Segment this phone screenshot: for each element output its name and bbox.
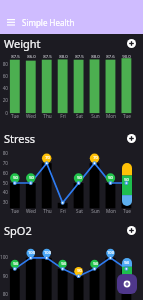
staticText: 94: [124, 260, 129, 265]
staticText: SpO2: [4, 223, 32, 238]
staticText: 100: [28, 250, 35, 255]
staticText: 100: [107, 250, 114, 255]
staticText: 90.0: [122, 53, 131, 59]
staticText: 50: [124, 177, 129, 182]
staticText: 50: [108, 175, 113, 180]
staticText: 94: [93, 261, 98, 266]
staticText: 0: [5, 110, 8, 116]
staticText: 87.5: [75, 53, 84, 59]
staticText: 90: [77, 268, 82, 273]
staticText: Tue: [123, 113, 131, 119]
staticText: 94: [13, 261, 18, 266]
staticText: Tue: [11, 113, 19, 119]
staticText: Fri: [60, 208, 66, 214]
staticText: 60: [2, 73, 8, 79]
staticText: 70: [45, 155, 50, 160]
staticText: 50: [2, 180, 8, 186]
staticText: Mon: [106, 113, 116, 119]
staticText: 30: [2, 199, 8, 205]
staticText: Simple Health: [22, 17, 75, 28]
staticText: 80: [2, 150, 8, 156]
staticText: 88.0: [59, 53, 68, 59]
staticText: 100: [0, 254, 8, 260]
button[interactable]: Add: [117, 274, 137, 294]
staticText: 86.0: [27, 53, 36, 59]
staticText: Tue: [11, 208, 19, 214]
button[interactable]: Add SpO2 entry: [125, 224, 138, 237]
staticText: 40: [2, 189, 8, 195]
staticText: 40: [2, 85, 8, 91]
button[interactable]: Add Stress entry: [125, 132, 138, 145]
staticText: Wed: [26, 208, 36, 214]
staticText: 80: [2, 61, 8, 67]
staticText: Tue: [123, 208, 131, 214]
staticText: Sat: [76, 113, 83, 119]
staticText: 87.5: [11, 53, 20, 59]
staticText: Sat: [76, 208, 83, 214]
staticText: 50: [29, 175, 34, 180]
button[interactable]: Open navigation menu: [2, 14, 19, 31]
staticText: 87.6: [106, 53, 115, 59]
staticText: Thu: [43, 113, 52, 119]
staticText: Thu: [43, 208, 52, 214]
staticText: 60: [2, 170, 8, 176]
staticText: Weight: [4, 36, 41, 51]
staticText: Sun: [91, 113, 100, 119]
staticText: Fri: [60, 113, 66, 119]
staticText: 94: [61, 261, 66, 266]
staticText: Stress: [4, 131, 36, 146]
staticText: 50: [13, 175, 18, 180]
staticText: 70: [93, 155, 98, 160]
staticText: 100: [44, 250, 51, 255]
staticText: Mon: [106, 208, 116, 214]
staticText: 70: [2, 160, 8, 166]
staticText: 80: [2, 291, 8, 297]
staticText: Wed: [26, 113, 36, 119]
button[interactable]: Add Weight entry: [125, 37, 138, 50]
staticText: 50: [77, 175, 82, 180]
staticText: 20: [2, 97, 8, 103]
staticText: 90: [2, 273, 8, 279]
staticText: 87.5: [43, 53, 52, 59]
staticText: 88.0: [91, 53, 100, 59]
staticText: Sun: [91, 208, 100, 214]
